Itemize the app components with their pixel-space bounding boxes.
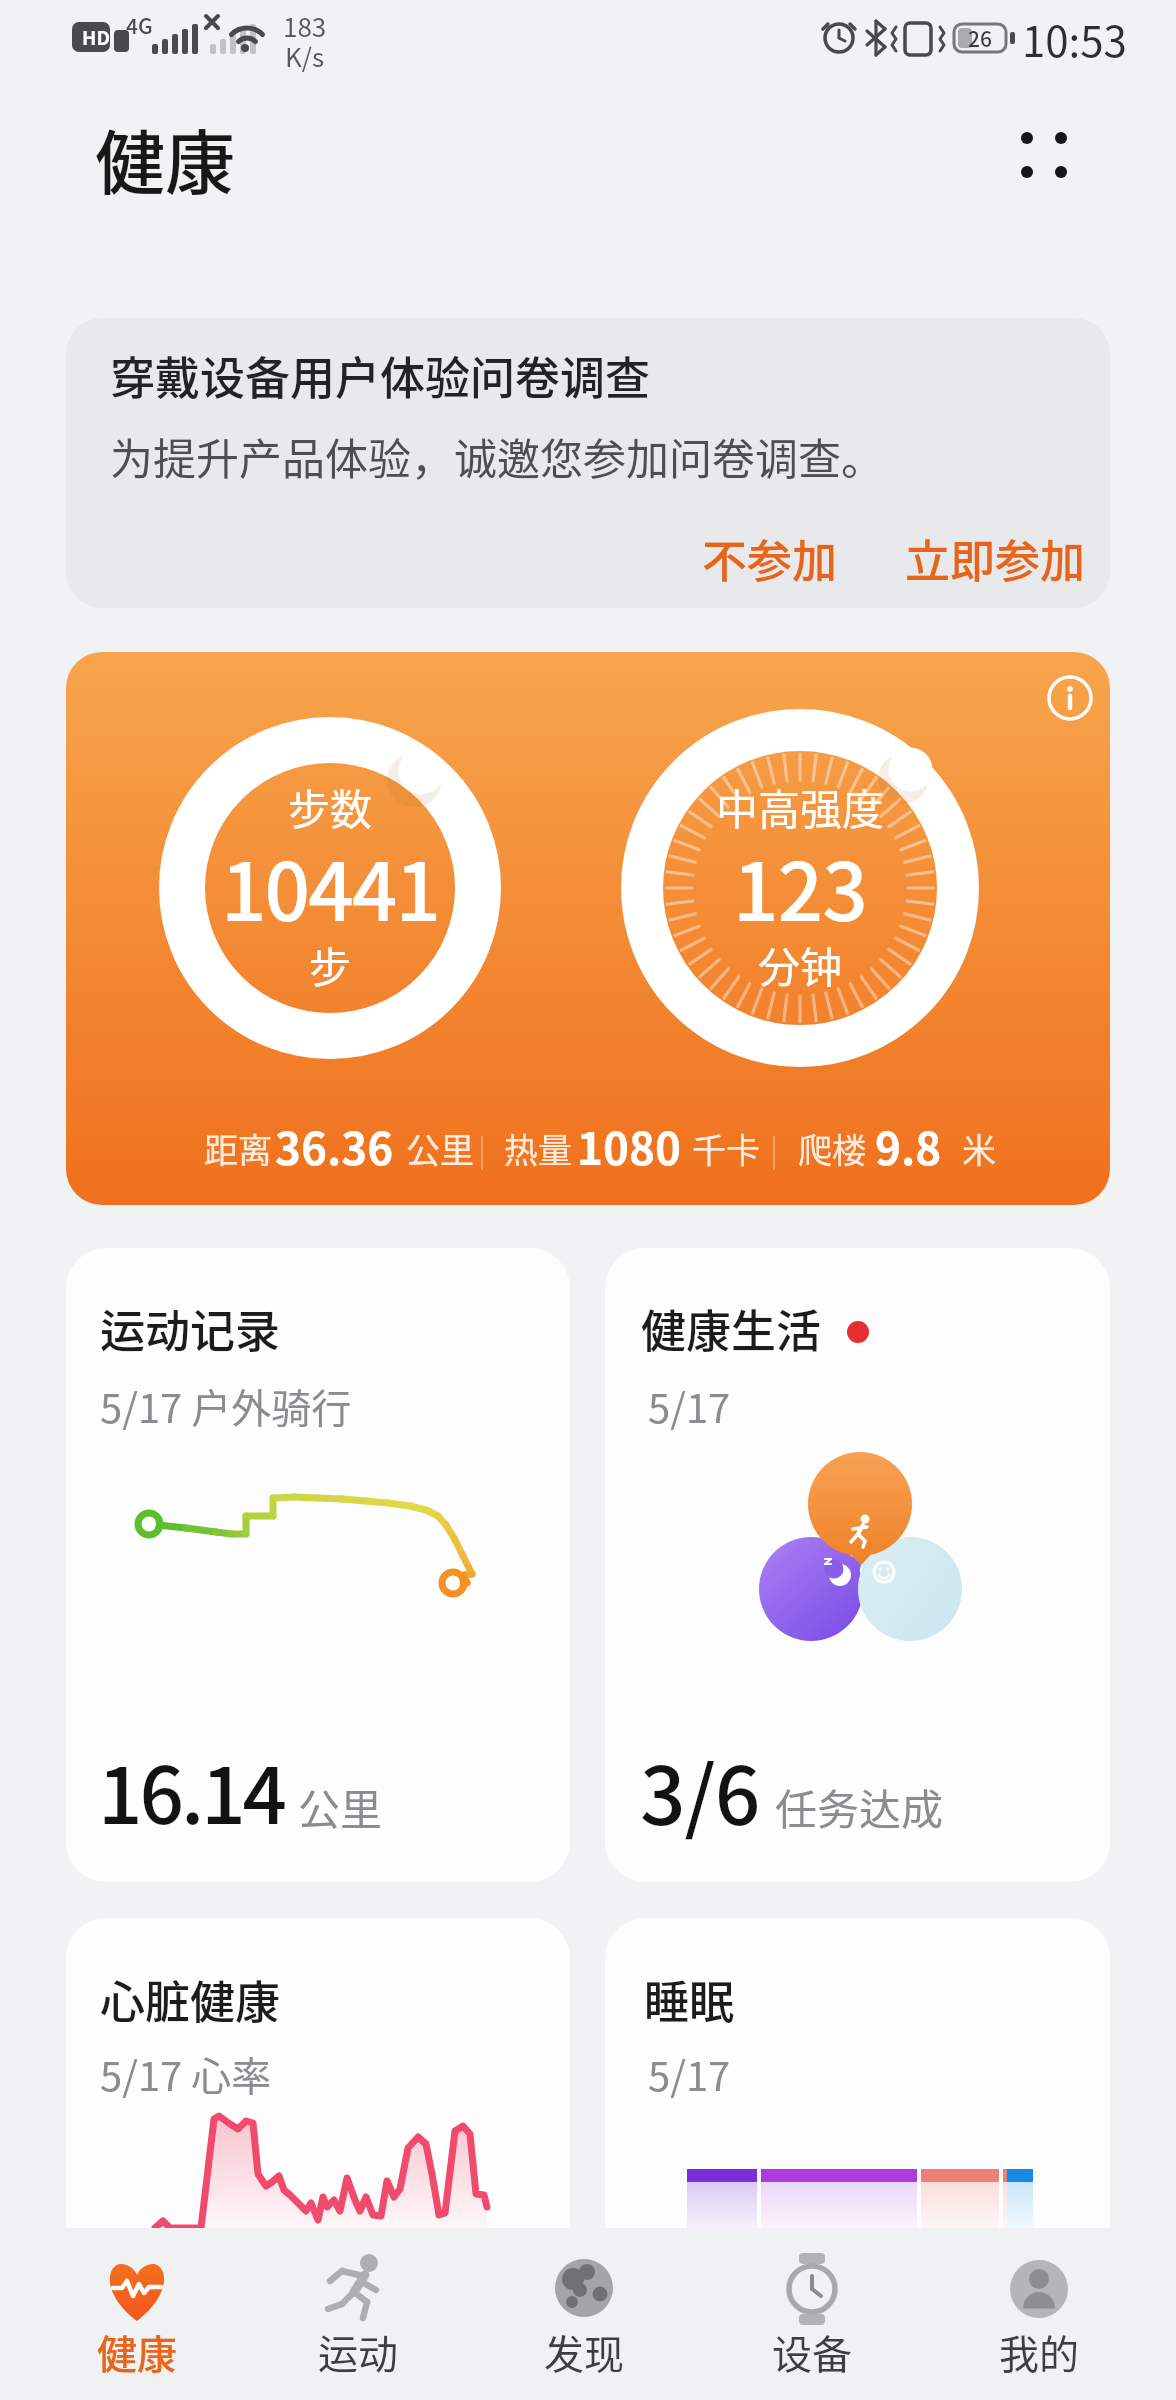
staticText: 公里	[298, 1776, 383, 1837]
staticText: 4G	[126, 10, 153, 40]
button[interactable]: 不参加	[690, 520, 850, 596]
staticText: 分钟	[758, 934, 843, 995]
button[interactable]	[268, 2238, 448, 2393]
staticText: 36.36	[275, 1114, 394, 1178]
staticText: 公里	[406, 1124, 474, 1173]
staticText: 米	[962, 1124, 996, 1173]
button[interactable]	[66, 318, 1110, 608]
staticText: 5/17	[648, 2045, 731, 2103]
button[interactable]	[494, 2238, 674, 2393]
staticText: 运动记录	[100, 1296, 281, 1361]
staticText: 26	[968, 23, 992, 53]
staticText: 10:53	[1022, 8, 1127, 69]
staticText: 健康	[97, 2323, 177, 2381]
staticText: HD	[82, 23, 110, 51]
staticText: 设备	[772, 2323, 852, 2381]
staticText: 为提升产品体验，诚邀您参加问卷调查。	[110, 425, 884, 487]
staticText: K/s	[285, 37, 325, 75]
staticText: 中高强度	[716, 776, 885, 837]
staticText: 步	[309, 934, 352, 995]
staticText: 健康生活	[641, 1296, 822, 1361]
button[interactable]	[949, 2238, 1129, 2393]
button[interactable]	[605, 1248, 1110, 1882]
button[interactable]	[1003, 114, 1085, 196]
staticText: 5/17	[648, 1377, 731, 1435]
staticText: 不参加	[702, 526, 838, 591]
button[interactable]	[722, 2238, 902, 2393]
staticText: 运动	[318, 2323, 398, 2381]
staticText: 千卡	[692, 1124, 760, 1173]
staticText: 睡眠	[644, 1967, 735, 2032]
staticText: 3/6	[640, 1732, 760, 1848]
staticText: 热量	[504, 1124, 572, 1173]
staticText: 穿戴设备用户体验问卷调查	[110, 343, 651, 408]
staticText: |	[770, 1126, 779, 1169]
staticText: 任务达成	[775, 1776, 944, 1837]
button[interactable]	[47, 2238, 227, 2393]
staticText: 16.14	[98, 1734, 285, 1847]
staticText: 9.8	[875, 1114, 942, 1178]
button[interactable]	[605, 1918, 1110, 2228]
staticText: 爬楼	[798, 1124, 866, 1173]
staticText: 5/17 心率	[100, 2045, 272, 2103]
staticText: |	[478, 1126, 487, 1169]
staticText: 健康	[95, 108, 235, 209]
staticText: 123	[733, 828, 867, 944]
staticText: 发现	[544, 2323, 624, 2381]
staticText: 立即参加	[905, 526, 1086, 591]
staticText: 心脏健康	[100, 1967, 281, 2032]
staticText: 10441	[221, 828, 439, 944]
staticText: 183	[283, 7, 327, 45]
staticText: 距离	[204, 1124, 272, 1173]
staticText: 步数	[288, 776, 373, 837]
staticText: 1080	[577, 1114, 681, 1178]
button[interactable]	[66, 1248, 570, 1882]
staticText: 5/17 户外骑行	[100, 1377, 352, 1435]
button[interactable]	[66, 1918, 570, 2228]
button[interactable]: 立即参加	[890, 520, 1100, 596]
button[interactable]	[66, 652, 1110, 1205]
staticText: 我的	[999, 2323, 1079, 2381]
